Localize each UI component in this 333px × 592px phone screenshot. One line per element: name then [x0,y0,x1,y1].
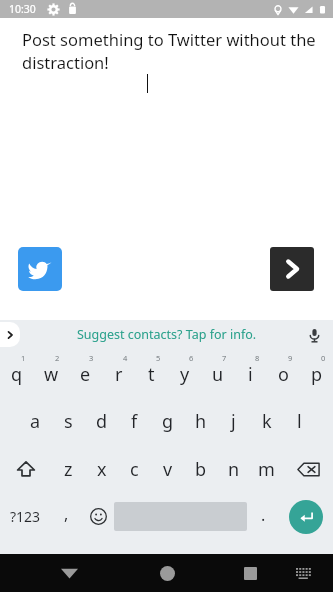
button[interactable]: Expand suggestions [0,322,20,347]
button[interactable]: 2 [34,349,68,397]
button[interactable]: 4 [102,349,135,397]
staticText: n [228,457,240,482]
staticText: f [131,409,138,434]
staticText: i [248,362,253,387]
button[interactable]: Emoji [82,493,114,540]
button[interactable]: Voice input [303,324,325,346]
button[interactable]: 0 [300,349,333,397]
staticText: ?123 [10,507,41,526]
button[interactable]: v [151,445,184,493]
staticText: e [80,362,91,387]
button[interactable]: x [85,445,118,493]
button[interactable]: k [250,397,283,445]
button[interactable]: Suggest contacts? Tap for info. [77,326,257,343]
button[interactable]: Send [270,247,314,291]
staticText: v [163,457,173,482]
staticText: m [258,457,275,482]
staticText: q [11,362,23,387]
staticText: o [278,362,289,387]
staticText: 4 [123,353,128,363]
staticText: 9 [288,353,293,363]
staticText: 10:30 [9,2,36,16]
button[interactable]: . [247,493,279,540]
staticText: l [297,409,302,434]
staticText: 2 [55,353,60,363]
button[interactable]: Twitter [18,247,62,291]
staticText: z [64,457,73,482]
button[interactable]: 8 [234,349,267,397]
staticText: 8 [255,353,260,363]
button[interactable]: z [51,445,85,493]
staticText: 5 [156,353,161,363]
button[interactable]: c [118,445,151,493]
staticText: p [311,362,323,387]
button[interactable]: , [50,493,82,540]
staticText: u [212,362,224,387]
button[interactable]: Shift [0,445,51,493]
staticText: r [115,362,123,387]
button[interactable]: Backspace [283,445,333,493]
staticText: 3 [89,353,94,363]
button[interactable]: d [85,397,118,445]
staticText: g [162,409,174,434]
button[interactable]: Home [152,558,182,588]
staticText: a [30,409,41,434]
staticText: . [261,504,266,526]
staticText: , [64,503,69,525]
button[interactable]: j [217,397,250,445]
button[interactable]: g [151,397,184,445]
staticText: w [44,362,59,387]
button[interactable]: h [184,397,217,445]
button[interactable]: m [250,445,283,493]
button[interactable]: ?123 [0,493,50,540]
button[interactable]: Enter [289,500,323,534]
staticText: x [97,457,107,482]
button[interactable]: s [52,397,85,445]
button[interactable]: 6 [168,349,201,397]
staticText: 0 [321,353,326,363]
button[interactable]: f [118,397,151,445]
staticText: Post something to Twitter without the di… [22,28,317,74]
button[interactable]: Back [54,558,84,588]
staticText: s [64,409,73,434]
button[interactable]: 3 [68,349,102,397]
staticText: d [96,409,108,434]
staticText: 7 [222,353,227,363]
button[interactable]: a [18,397,52,445]
button[interactable]: 5 [135,349,168,397]
staticText: 1 [21,353,26,363]
staticText: c [130,457,139,482]
button[interactable]: n [217,445,250,493]
button[interactable]: b [184,445,217,493]
staticText: b [195,457,207,482]
staticText: j [231,409,236,434]
staticText: k [262,409,272,434]
button[interactable]: l [283,397,316,445]
button[interactable]: Recent apps [235,558,265,588]
button[interactable]: 7 [201,349,234,397]
button[interactable]: 1 [0,349,34,397]
staticText: 6 [189,353,194,363]
button[interactable]: Switch keyboard [291,560,317,586]
staticText: h [195,409,207,434]
button[interactable]: 9 [267,349,300,397]
staticText: y [180,362,190,387]
staticText: t [148,362,155,387]
